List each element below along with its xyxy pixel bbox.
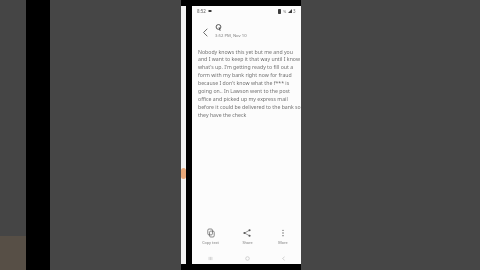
button[interactable]: Back: [198, 25, 212, 39]
staticText: 3:52 PM, Nov 10: [215, 33, 247, 39]
staticText: Nobody knows this yet but me and you and…: [198, 48, 301, 119]
button[interactable]: Back: [265, 253, 301, 264]
button[interactable]: Home: [229, 253, 265, 264]
staticText: Copy text: [202, 240, 219, 245]
button[interactable]: More: [265, 226, 301, 248]
staticText: Share: [242, 240, 253, 245]
staticText: 3: [293, 8, 296, 14]
staticText: %: [283, 9, 287, 14]
button[interactable]: Recents: [192, 253, 229, 264]
button[interactable]: Copy text: [192, 226, 229, 248]
staticText: 8:52: [197, 8, 206, 14]
button[interactable]: Share: [229, 226, 265, 248]
staticText: More: [278, 240, 288, 245]
